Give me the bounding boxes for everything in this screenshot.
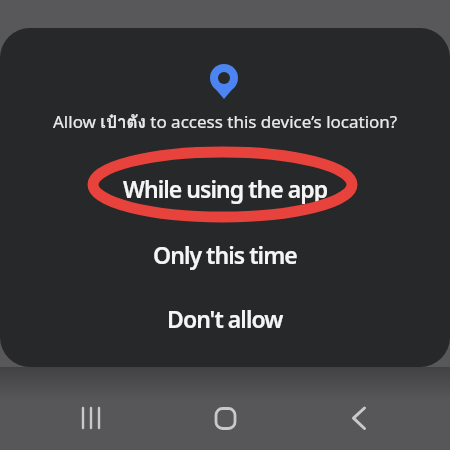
button[interactable] (335, 394, 383, 442)
button[interactable]: While using the app (0, 170, 450, 206)
button[interactable]: Don't allow (0, 300, 450, 336)
staticText: While using the app (123, 173, 328, 204)
button[interactable] (67, 394, 115, 442)
staticText: Allow เป๋าตัง to access this device’s lo… (53, 108, 398, 134)
staticText: Only this time (153, 239, 297, 270)
button[interactable]: Only this time (0, 236, 450, 272)
button[interactable] (201, 394, 249, 442)
staticText: Don't allow (167, 303, 283, 334)
